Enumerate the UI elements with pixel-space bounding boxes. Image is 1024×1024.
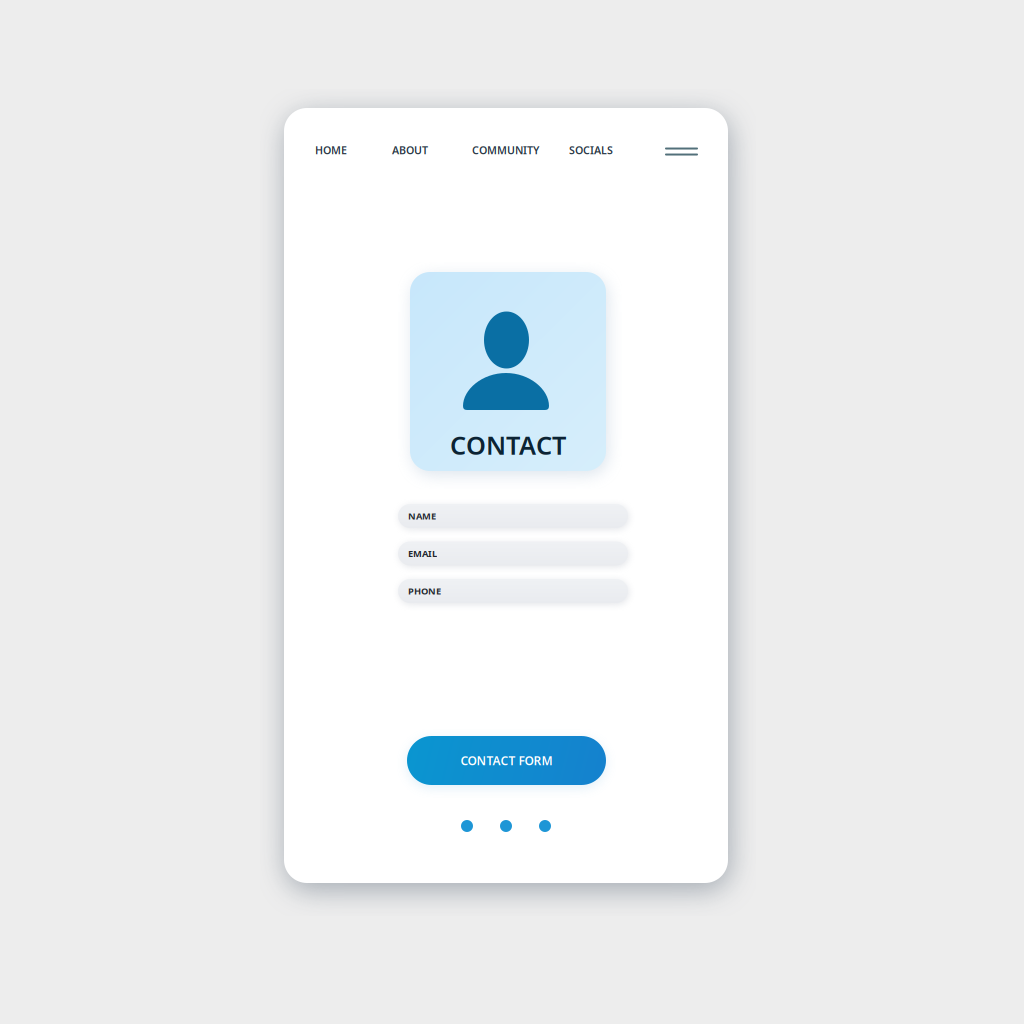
button[interactable]: NAME [398, 504, 628, 528]
staticText: COMMUNITY [472, 143, 539, 157]
staticText: CONTACT FORM [460, 752, 552, 768]
staticText: SOCIALS [569, 143, 613, 157]
button[interactable]: Page 2 [500, 820, 512, 832]
staticText: CONTACT [450, 428, 566, 462]
button[interactable]: CONTACT FORM [407, 736, 606, 785]
staticText: EMAIL [408, 547, 437, 560]
button[interactable]: PHONE [398, 579, 628, 603]
button[interactable]: HOME [315, 142, 347, 158]
button[interactable]: SOCIALS [569, 142, 613, 158]
staticText: ABOUT [392, 143, 428, 157]
button[interactable]: COMMUNITY [472, 142, 539, 158]
staticText: HOME [315, 143, 347, 157]
staticText: NAME [408, 510, 436, 522]
button[interactable]: ABOUT [392, 142, 428, 158]
button[interactable]: Menu [661, 140, 702, 162]
button[interactable]: Page 3 [539, 820, 551, 832]
button[interactable]: Page 1 [461, 820, 473, 832]
staticText: PHONE [408, 585, 441, 597]
button[interactable]: EMAIL [398, 541, 628, 565]
